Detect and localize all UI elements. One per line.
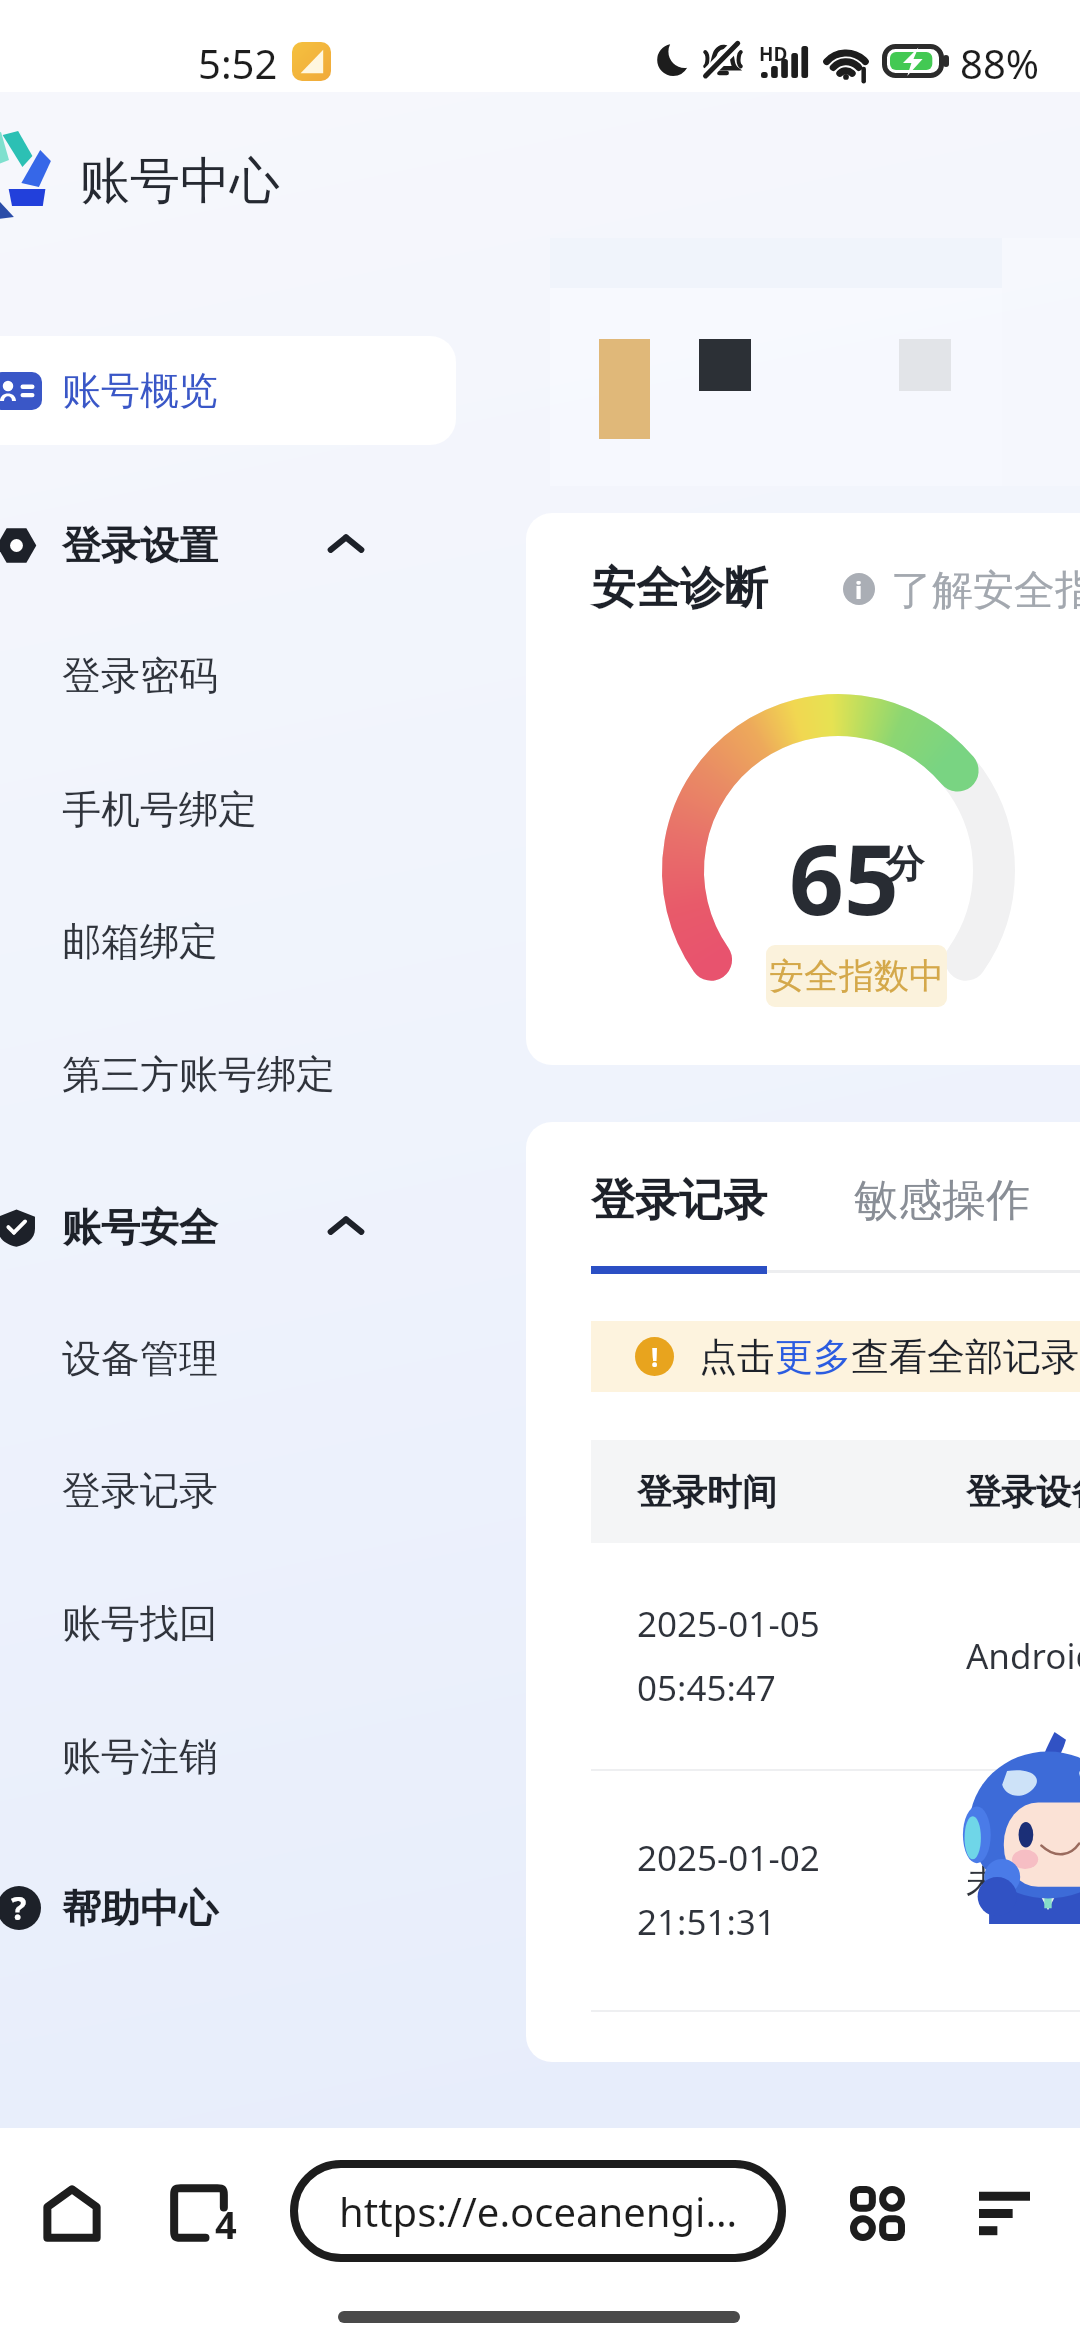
staticText: 65 — [789, 812, 899, 943]
button[interactable]: i — [843, 565, 1080, 613]
staticText: 登录设置 — [62, 521, 218, 570]
staticText: 登录密码 — [62, 651, 218, 700]
button[interactable]: 账号概览 — [0, 336, 456, 445]
button[interactable]: 登录记录 — [0, 1438, 525, 1542]
staticText: 2025-01-05 — [637, 1600, 820, 1648]
button[interactable]: 第三方账号绑定 — [0, 1022, 525, 1126]
staticText: 账号安全 — [62, 1203, 218, 1252]
button[interactable]: 手机号绑定 — [0, 757, 525, 861]
staticText: i — [855, 573, 863, 605]
staticText: 账号中心 — [80, 150, 280, 210]
staticText: 邮箱绑定 — [62, 917, 218, 966]
button[interactable]: Apps — [822, 2158, 932, 2268]
button[interactable]: Menu — [949, 2158, 1059, 2268]
staticText: 账号注销 — [62, 1732, 218, 1781]
staticText: 88% — [960, 36, 1039, 90]
button[interactable]: 登录设置 — [0, 491, 525, 599]
staticText: 账号概览 — [62, 366, 218, 415]
staticText: 5:52 — [198, 36, 278, 90]
button[interactable]: 账号安全 — [0, 1173, 525, 1281]
button[interactable]: 登录记录 — [591, 1167, 767, 1233]
staticText: ! — [651, 1339, 659, 1374]
staticText: 敏感操作 — [854, 1173, 1030, 1228]
button[interactable]: Home — [17, 2158, 127, 2268]
staticText: Android — [966, 1632, 1080, 1680]
button[interactable]: ! — [591, 1321, 1080, 1392]
button[interactable]: 2025-01-05 — [591, 1543, 1080, 1769]
staticText: 登录记录 — [62, 1466, 218, 1515]
staticText: 设备管理 — [62, 1334, 218, 1383]
staticText: 安全指数中 — [769, 954, 944, 998]
staticText: 21:51:31 — [637, 1898, 776, 1946]
staticText: 账号找回 — [62, 1599, 218, 1648]
staticText: ? — [11, 1886, 27, 1930]
staticText: 登录记录 — [591, 1173, 767, 1228]
button[interactable]: 账号注销 — [0, 1704, 525, 1808]
button[interactable]: ? — [0, 1854, 525, 1962]
staticText: 2025-01-02 — [637, 1834, 820, 1882]
staticText: 帮助中心 — [62, 1884, 218, 1933]
staticText: 登录时间 — [637, 1470, 777, 1514]
button[interactable]: Tabs — [144, 2158, 254, 2268]
button[interactable]: 登录密码 — [0, 623, 525, 727]
staticText: 了解安全指数 — [891, 565, 1080, 613]
staticText: 手机号绑定 — [62, 785, 257, 834]
button[interactable]: 邮箱绑定 — [0, 889, 525, 993]
staticText: HD — [759, 41, 788, 67]
button[interactable]: 设备管理 — [0, 1306, 525, 1410]
staticText: https://e.oceanengi… — [339, 2184, 738, 2238]
staticText: 4 — [215, 2198, 237, 2250]
button[interactable]: 账号找回 — [0, 1571, 525, 1675]
staticText: 未知 — [966, 1860, 1036, 1904]
staticText: 登录设备 — [966, 1470, 1080, 1514]
staticText: 安全诊断 — [592, 561, 768, 616]
button[interactable]: 2025-01-02 — [591, 1769, 1080, 2010]
staticText: 第三方账号绑定 — [62, 1050, 335, 1099]
staticText: 点击更多查看全部记录，若 — [699, 1333, 1080, 1381]
button[interactable]: 敏感操作 — [854, 1167, 1030, 1233]
staticText: 05:45:47 — [637, 1664, 776, 1712]
button[interactable]: https://e.oceanengi… — [290, 2160, 786, 2262]
staticText: 分 — [886, 840, 924, 888]
